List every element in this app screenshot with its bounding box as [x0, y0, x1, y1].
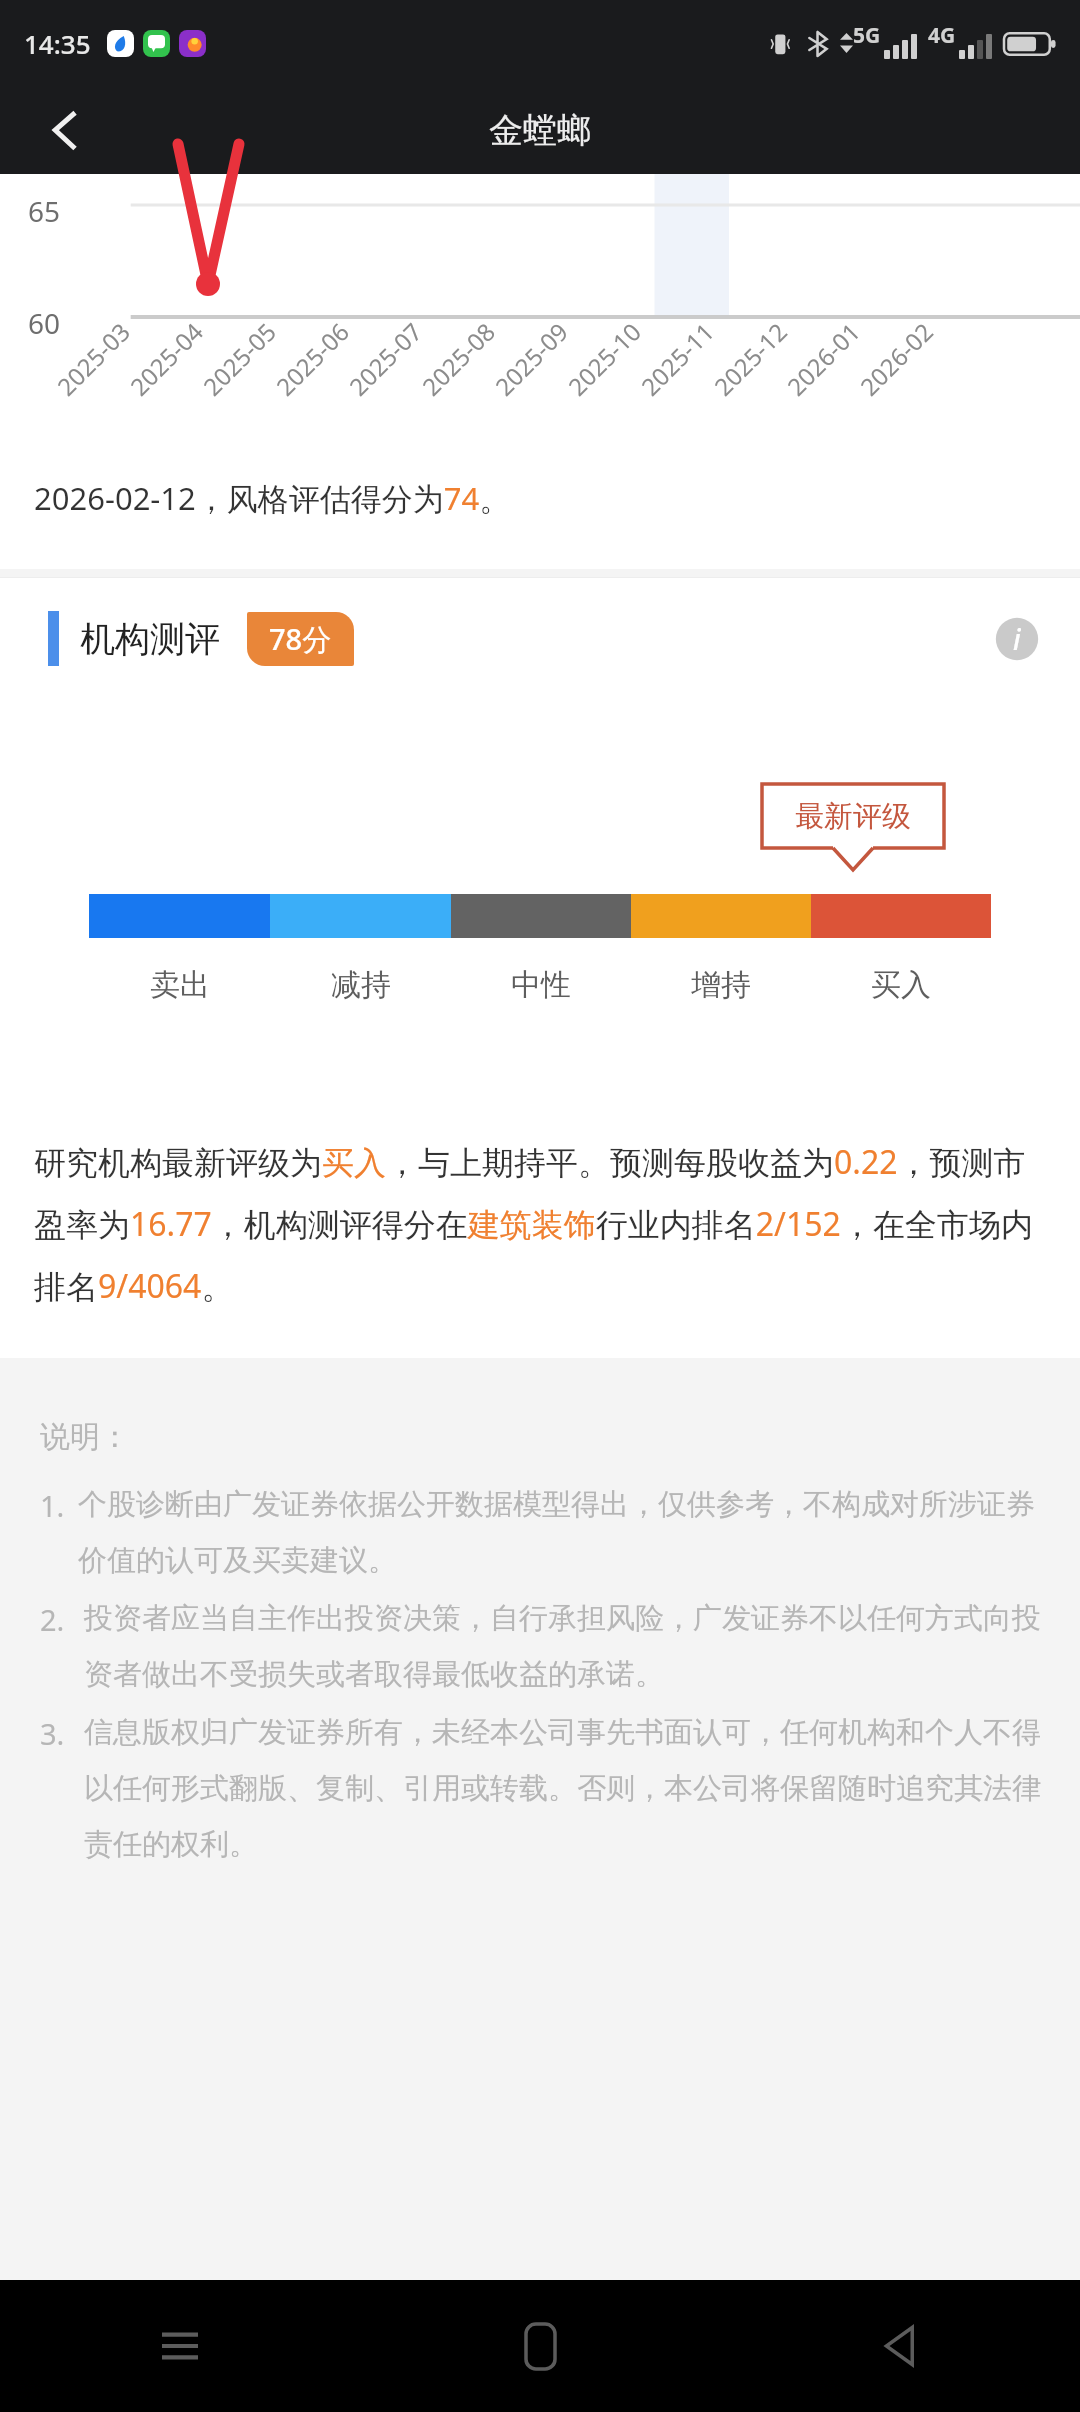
staticText: 2026-02: [853, 315, 940, 402]
staticText: 2025-11: [634, 315, 721, 402]
staticText: 中性: [511, 966, 571, 1004]
staticText: 3.: [40, 1714, 65, 1753]
staticText: 投资者应当自主作出投资决策，自行承担风险，广发证券不以任何方式向投资者做出不受损…: [84, 1600, 1044, 1692]
staticText: 2.: [40, 1600, 65, 1639]
staticText: 4G: [928, 21, 956, 50]
staticText: 增持: [691, 966, 751, 1004]
staticText: 买入: [871, 966, 931, 1004]
staticText: 2025-08: [415, 315, 502, 402]
staticText: 2025-06: [269, 315, 356, 402]
staticText: i: [1013, 620, 1021, 658]
staticText: 金螳螂: [489, 109, 591, 152]
button[interactable]: Back: [36, 100, 96, 160]
staticText: 说明：: [40, 1418, 130, 1456]
staticText: 卖出: [150, 966, 210, 1004]
staticText: 2025-05: [196, 315, 283, 402]
staticText: 2025-10: [561, 315, 648, 402]
staticText: 最新评级: [795, 798, 911, 835]
staticText: 减持: [331, 966, 391, 1004]
staticText: 研究机构最新评级为买入，与上期持平。预测每股收益为0.22，预测市盈率为16.7…: [34, 1140, 1052, 1308]
staticText: 信息版权归广发证券所有，未经本公司事先书面认可，任何机构和个人不得以任何形式翻版…: [84, 1714, 1044, 1862]
staticText: 2026-01: [780, 315, 867, 402]
staticText: 2026-02-12，风格评估得分为74。: [34, 477, 511, 519]
staticText: 个股诊断由广发证券依据公开数据模型得出，仅供参考，不构成对所涉证券价值的认可及买…: [78, 1486, 1044, 1578]
staticText: 60: [28, 304, 61, 342]
staticText: 65: [28, 192, 61, 230]
staticText: 1.: [40, 1486, 65, 1525]
button[interactable]: Home: [502, 2308, 578, 2384]
button[interactable]: Info: [994, 616, 1040, 662]
staticText: 机构测评: [80, 617, 220, 661]
staticText: 2025-12: [707, 315, 794, 402]
staticText: 78分: [269, 619, 332, 659]
staticText: 5G: [853, 21, 881, 50]
staticText: 2025-03: [50, 315, 137, 402]
button[interactable]: Recent apps: [142, 2308, 218, 2384]
button[interactable]: 最新评级: [762, 784, 944, 848]
button[interactable]: 78分: [247, 612, 354, 666]
staticText: 14:35: [24, 26, 91, 61]
staticText: 2025-09: [488, 315, 575, 402]
staticText: 2025-04: [123, 315, 210, 402]
staticText: 2025-07: [342, 315, 429, 402]
button[interactable]: Back: [862, 2308, 938, 2384]
